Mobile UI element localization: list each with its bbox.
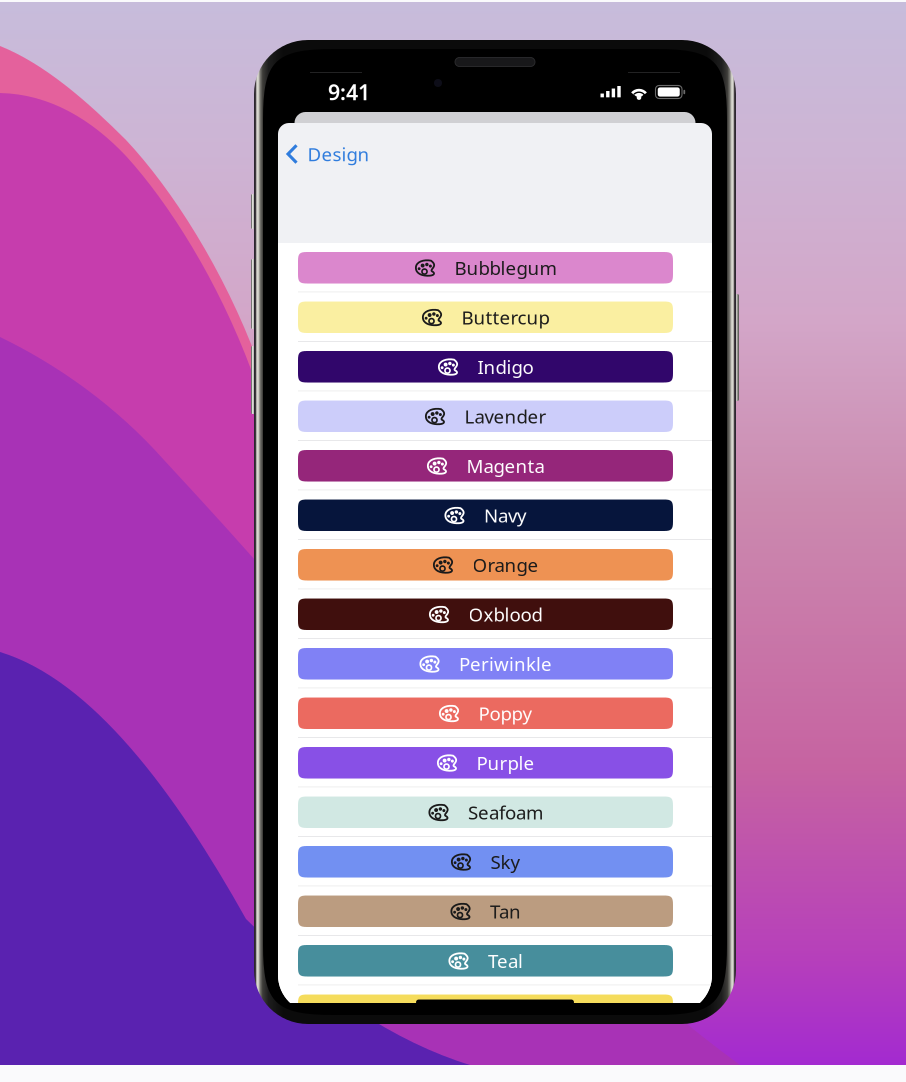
button[interactable]: Lavender bbox=[278, 391, 712, 441]
button[interactable]: Design bbox=[278, 132, 428, 176]
button[interactable]: Indigo bbox=[278, 342, 712, 391]
button[interactable]: Periwinkle bbox=[278, 639, 712, 688]
staticText: Oxblood bbox=[468, 602, 542, 627]
button[interactable]: Tan bbox=[278, 886, 712, 936]
staticText: Periwinkle bbox=[459, 651, 552, 676]
button[interactable]: Teal bbox=[278, 936, 712, 985]
button[interactable]: Magenta bbox=[278, 441, 712, 490]
button[interactable]: Orange bbox=[278, 540, 712, 589]
button[interactable]: Poppy bbox=[278, 688, 712, 738]
staticText: Sky bbox=[490, 849, 520, 874]
button[interactable]: Yellow bbox=[278, 985, 712, 1035]
staticText: Navy bbox=[484, 503, 527, 528]
button[interactable]: Oxblood bbox=[278, 589, 712, 639]
button[interactable]: Seafoam bbox=[278, 787, 712, 837]
staticText: Bubblegum bbox=[454, 255, 556, 280]
staticText: Seafoam bbox=[468, 800, 543, 825]
button[interactable]: Bubblegum bbox=[278, 243, 712, 292]
staticText: Purple bbox=[476, 750, 534, 775]
button[interactable]: Purple bbox=[278, 738, 712, 787]
staticText: Buttercup bbox=[461, 305, 549, 330]
staticText: Teal bbox=[488, 948, 523, 973]
button[interactable]: Sky bbox=[278, 837, 712, 886]
staticText: Design bbox=[307, 142, 369, 166]
staticText: Poppy bbox=[478, 701, 532, 726]
staticText: Yellow bbox=[477, 998, 534, 1023]
button[interactable]: Buttercup bbox=[278, 292, 712, 342]
staticText: Orange bbox=[472, 552, 538, 577]
staticText: Indigo bbox=[477, 354, 533, 379]
staticText: Lavender bbox=[464, 404, 546, 429]
staticText: 9:41 bbox=[328, 78, 370, 106]
button[interactable]: Navy bbox=[278, 490, 712, 540]
staticText: Magenta bbox=[466, 453, 544, 478]
staticText: Tan bbox=[490, 899, 521, 924]
